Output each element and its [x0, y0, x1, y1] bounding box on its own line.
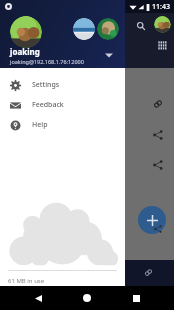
button[interactable]: Recents	[125, 287, 147, 309]
button[interactable]: Back	[27, 287, 49, 309]
button[interactable]: Settings	[0, 75, 125, 95]
staticText: joaking@192.168.1.76:12000	[10, 58, 84, 65]
staticText: 11:43	[152, 2, 170, 12]
button[interactable]: Share	[151, 158, 165, 172]
button[interactable]: Account beach	[0, 0, 125, 68]
staticText: joaking	[10, 46, 40, 57]
staticText: 61 MB in use	[8, 277, 45, 285]
button[interactable]: Feedback	[0, 95, 125, 115]
button[interactable]: Help	[0, 115, 125, 135]
button[interactable]: Account green	[97, 18, 119, 40]
staticText: Settings	[32, 80, 60, 90]
button[interactable]: Grid view	[156, 39, 169, 52]
button[interactable]: Home	[76, 287, 98, 309]
button[interactable]: Add	[138, 206, 166, 234]
button[interactable]: Expand accounts	[102, 48, 116, 62]
button[interactable]: Search	[132, 17, 150, 35]
staticText: Help	[32, 120, 48, 130]
button[interactable]: Account	[154, 16, 171, 33]
button[interactable]: Share	[151, 128, 165, 142]
button[interactable]: Link	[141, 265, 156, 280]
button[interactable]: Account beach	[73, 18, 95, 40]
staticText: Feedback	[32, 100, 64, 110]
button[interactable]: Link	[151, 97, 165, 111]
